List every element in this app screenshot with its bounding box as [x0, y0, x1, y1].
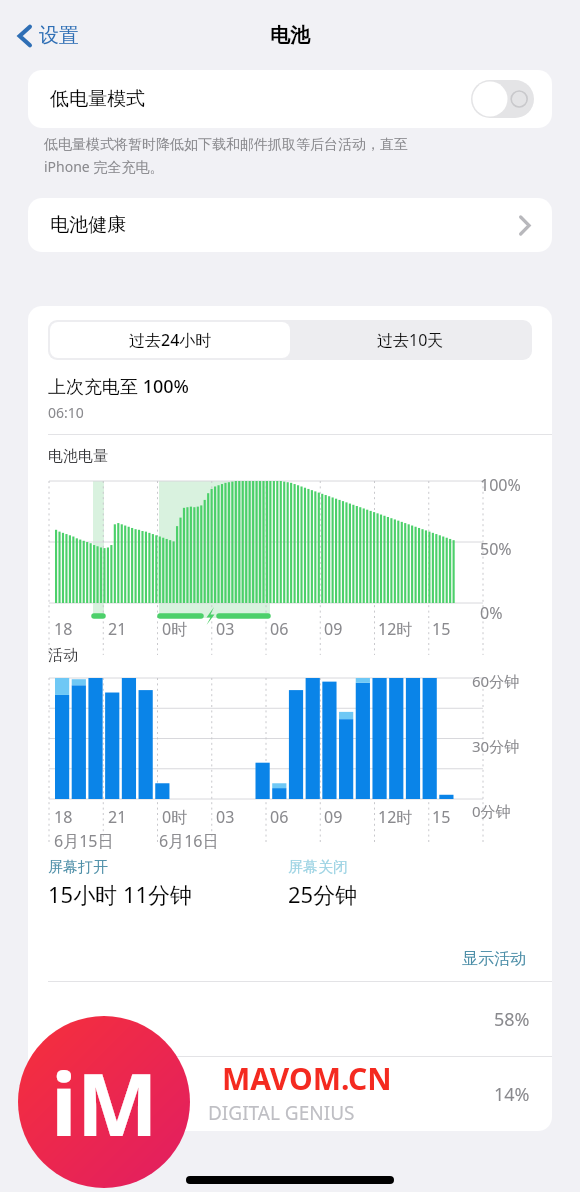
button[interactable]: 低电量模式: [28, 70, 552, 128]
staticText: 58%: [494, 1007, 530, 1032]
staticText: 15: [432, 806, 451, 828]
button[interactable]: 过去24小时: [50, 322, 290, 358]
staticText: 15小时 11分钟: [48, 879, 193, 909]
staticText: 21: [108, 806, 127, 828]
staticText: 18: [54, 806, 73, 828]
staticText: 60分钟: [472, 671, 520, 691]
staticText: iM: [51, 1044, 158, 1161]
staticText: 100%: [480, 474, 521, 496]
button[interactable]: 58%: [28, 982, 552, 1056]
staticText: 低电量模式: [50, 87, 145, 111]
staticText: 14%: [494, 1082, 530, 1107]
staticText: MAVOM.CN: [222, 1058, 392, 1099]
button[interactable]: 电池健康: [28, 198, 552, 252]
staticText: 06:10: [48, 403, 84, 422]
button[interactable]: 过去10天: [290, 322, 530, 358]
staticText: 06: [270, 618, 289, 640]
staticText: 显示活动: [462, 949, 526, 969]
staticText: 过去24小时: [129, 329, 212, 351]
staticText: iPhone 完全充电。: [44, 157, 164, 176]
staticText: 6月15日: [54, 830, 114, 852]
staticText: DIGITAL GENIUS: [208, 1100, 355, 1126]
staticText: 设置: [39, 23, 79, 48]
staticText: 电池: [270, 23, 310, 48]
staticText: 上次充电至 100%: [48, 374, 189, 399]
staticText: 50%: [480, 538, 512, 560]
button[interactable]: 贴吧: [28, 1057, 552, 1131]
staticText: 12时: [378, 618, 413, 640]
staticText: 06: [270, 806, 289, 828]
staticText: 低电量模式将暂时降低如下载和邮件抓取等后台活动，直至: [44, 136, 408, 154]
button[interactable]: 显示活动: [458, 945, 530, 973]
staticText: 0时: [162, 806, 188, 828]
staticText: 屏幕打开: [48, 858, 108, 877]
staticText: 贴吧: [138, 1083, 174, 1106]
staticText: 09: [324, 806, 343, 828]
staticText: 0时: [162, 618, 188, 640]
staticText: 电池健康: [50, 213, 126, 237]
staticText: 过去10天: [377, 329, 444, 351]
staticText: 03: [216, 806, 235, 828]
staticText: 09: [324, 618, 343, 640]
staticText: 0分钟: [472, 801, 511, 821]
button[interactable]: 低电量模式开关: [471, 80, 534, 118]
staticText: 屏幕关闭: [288, 858, 348, 877]
staticText: 电池电量: [48, 447, 108, 466]
staticText: 15: [432, 618, 451, 640]
staticText: 活动: [48, 646, 78, 665]
staticText: 03: [216, 618, 235, 640]
staticText: 12时: [378, 806, 413, 828]
staticText: 18: [54, 618, 73, 640]
staticText: 30分钟: [472, 736, 520, 756]
button[interactable]: 设置: [14, 17, 83, 54]
staticText: 25分钟: [288, 879, 358, 909]
staticText: 6月16日: [159, 830, 219, 852]
staticText: 0%: [480, 602, 503, 624]
staticText: 21: [108, 618, 127, 640]
